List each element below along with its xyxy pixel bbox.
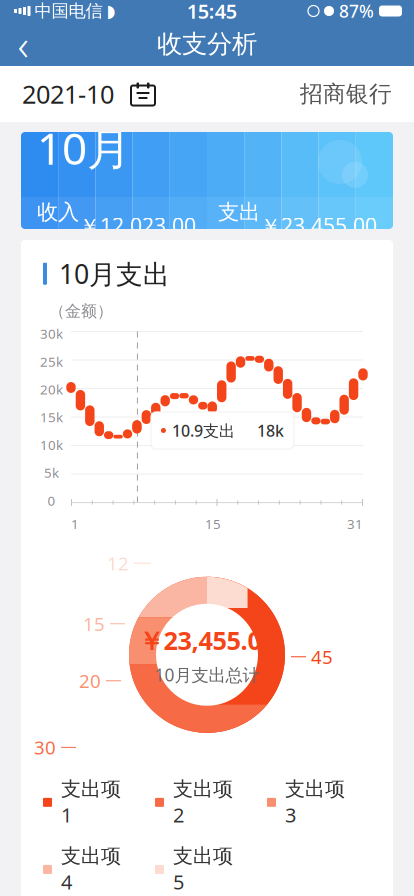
staticText: 10月支出: [59, 256, 170, 291]
staticText: 10.9支出: [172, 420, 235, 441]
button[interactable]: 支出项2: [155, 777, 259, 828]
staticText: 收支分析: [157, 28, 257, 59]
staticText: 20: [79, 668, 101, 693]
staticText: ￥23,455.00: [138, 623, 275, 657]
staticText: 25k: [40, 353, 63, 370]
staticText: 支出项2: [173, 777, 233, 828]
staticText: 15k: [40, 408, 63, 426]
staticText: 收入: [37, 199, 79, 225]
staticText: 18k: [257, 420, 284, 441]
staticText: 2021-10: [22, 77, 114, 111]
button[interactable]: 支出项4: [43, 844, 147, 895]
staticText: 10月: [37, 118, 131, 177]
staticText: 20k: [40, 380, 63, 398]
staticText: 支出: [218, 199, 260, 225]
button[interactable]: 招商银行: [300, 71, 392, 117]
staticText: 招商银行: [300, 80, 392, 108]
staticText: ‹: [17, 16, 28, 72]
button[interactable]: Back: [0, 22, 46, 66]
staticText: 10月支出总计: [154, 663, 259, 686]
button[interactable]: 支出项3: [267, 777, 371, 828]
staticText: 支出项3: [285, 777, 345, 828]
staticText: 12: [107, 551, 129, 576]
staticText: ￥12,023.00: [79, 185, 196, 239]
staticText: 支出项1: [61, 777, 121, 828]
staticText: 15: [83, 611, 105, 636]
staticText: 中国电信: [34, 0, 102, 22]
button[interactable]: 支出项5: [155, 844, 259, 895]
staticText: 30: [34, 735, 56, 760]
button[interactable]: 支出项1: [43, 777, 147, 828]
staticText: ◗: [106, 1, 115, 21]
staticText: 15:45: [187, 0, 237, 24]
staticText: 87%: [339, 0, 374, 22]
staticText: 支出项4: [61, 844, 121, 895]
staticText: 0: [47, 492, 55, 509]
staticText: 10k: [40, 436, 63, 454]
staticText: 5k: [44, 464, 59, 481]
staticText: 1: [71, 515, 79, 533]
staticText: 支出项5: [173, 844, 233, 895]
staticText: ￥23,455.00: [260, 185, 377, 239]
staticText: 45: [311, 644, 333, 669]
staticText: 31: [347, 515, 363, 533]
staticText: 15: [205, 515, 221, 533]
staticText: （金额）: [49, 301, 113, 321]
button[interactable]: 2021-10: [22, 68, 156, 120]
staticText: 30k: [40, 325, 63, 342]
